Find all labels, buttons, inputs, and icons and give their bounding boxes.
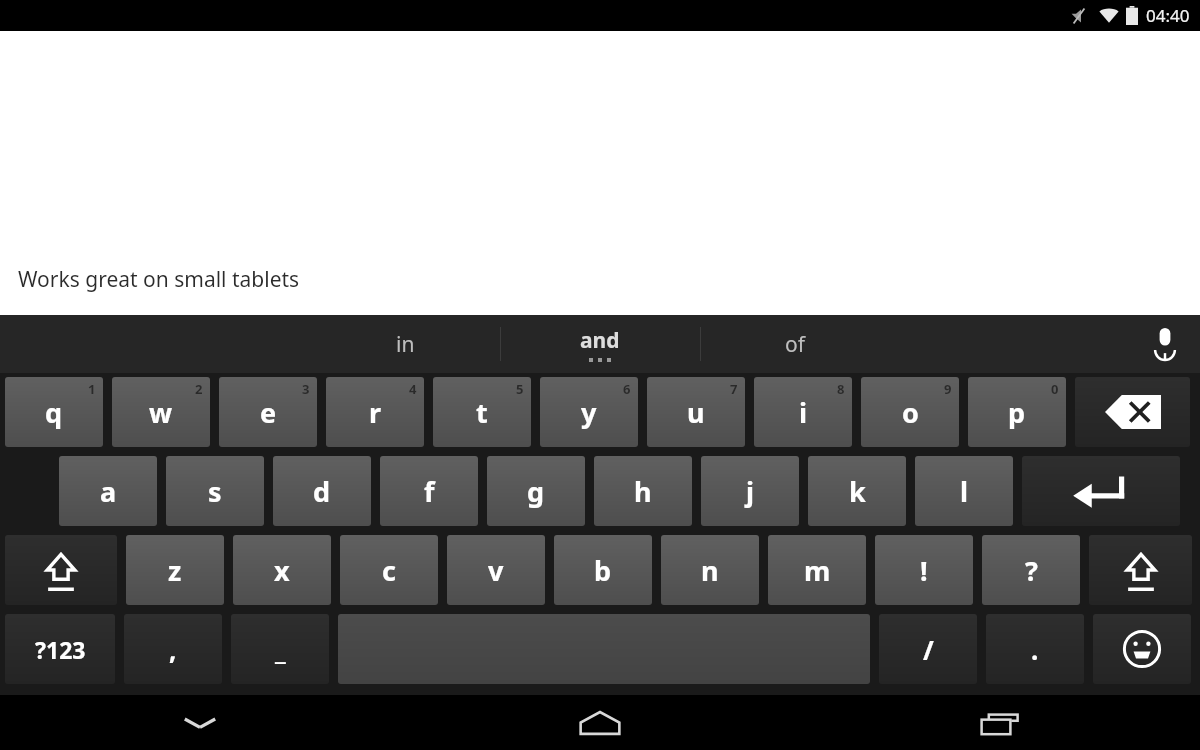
staticText: i — [799, 394, 808, 431]
button[interactable]: Shift — [1089, 535, 1192, 605]
staticText: a — [100, 473, 117, 510]
button[interactable]: . — [986, 614, 1084, 684]
staticText: 6 — [623, 380, 631, 398]
staticText: _ — [275, 632, 286, 667]
staticText: . — [1031, 632, 1039, 667]
staticText: 3 — [302, 380, 310, 398]
staticText: ? — [1025, 552, 1038, 589]
staticText: u — [687, 394, 705, 431]
staticText: d — [313, 473, 331, 510]
button[interactable]: r — [326, 377, 424, 447]
staticText: y — [581, 394, 597, 431]
staticText: o — [902, 394, 919, 431]
staticText: Works great on small tablets — [18, 265, 300, 294]
button[interactable]: Recent apps — [800, 695, 1200, 750]
staticText: e — [260, 394, 277, 431]
staticText: / — [923, 632, 934, 667]
button[interactable]: in — [310, 315, 500, 373]
staticText: m — [804, 552, 831, 589]
staticText: 9 — [944, 380, 952, 398]
button[interactable]: m — [768, 535, 866, 605]
button[interactable]: x — [233, 535, 331, 605]
staticText: s — [208, 473, 222, 510]
staticText: and — [580, 326, 620, 355]
button[interactable]: v — [447, 535, 545, 605]
button[interactable]: , — [124, 614, 222, 684]
staticText: 04:40 — [1146, 4, 1190, 27]
button[interactable]: f — [380, 456, 478, 526]
staticText: z — [168, 552, 182, 589]
staticText: 5 — [516, 380, 524, 398]
button[interactable]: Home — [400, 695, 800, 750]
staticText: b — [594, 552, 612, 589]
staticText: v — [488, 552, 504, 589]
staticText: 1 — [88, 380, 96, 398]
staticText: 4 — [409, 380, 417, 398]
button[interactable]: u — [647, 377, 745, 447]
button[interactable]: and — [500, 315, 700, 373]
staticText: c — [382, 552, 396, 589]
button[interactable]: i — [754, 377, 852, 447]
staticText: q — [45, 394, 63, 431]
button[interactable]: _ — [231, 614, 329, 684]
button[interactable]: p — [968, 377, 1066, 447]
staticText: w — [149, 394, 173, 431]
button[interactable]: c — [340, 535, 438, 605]
button[interactable]: ? — [982, 535, 1080, 605]
button[interactable]: w — [112, 377, 210, 447]
staticText: 7 — [730, 380, 738, 398]
staticText: h — [634, 473, 652, 510]
staticText: x — [274, 552, 290, 589]
button[interactable]: b — [554, 535, 652, 605]
staticText: r — [369, 394, 382, 431]
button[interactable]: l — [915, 456, 1013, 526]
button[interactable]: h — [594, 456, 692, 526]
button[interactable]: s — [166, 456, 264, 526]
button[interactable]: g — [487, 456, 585, 526]
staticText: 8 — [837, 380, 845, 398]
staticText: t — [476, 394, 488, 431]
button[interactable]: k — [808, 456, 906, 526]
button[interactable]: a — [59, 456, 157, 526]
button[interactable]: ! — [875, 535, 973, 605]
staticText: ! — [920, 552, 928, 589]
button[interactable]: t — [433, 377, 531, 447]
button[interactable]: ?123 — [5, 614, 115, 684]
staticText: 2 — [195, 380, 203, 398]
button[interactable]: / — [879, 614, 977, 684]
staticText: j — [746, 473, 755, 510]
staticText: 0 — [1051, 380, 1059, 398]
button[interactable]: of — [700, 315, 890, 373]
staticText: g — [527, 473, 545, 510]
button[interactable]: j — [701, 456, 799, 526]
staticText: n — [701, 552, 719, 589]
button[interactable]: Enter — [1022, 456, 1180, 526]
button[interactable]: q — [5, 377, 103, 447]
staticText: of — [785, 330, 805, 359]
staticText: in — [396, 330, 415, 359]
staticText: f — [424, 473, 435, 510]
button[interactable]: y — [540, 377, 638, 447]
staticText: k — [849, 473, 866, 510]
button[interactable]: d — [273, 456, 371, 526]
button[interactable]: n — [661, 535, 759, 605]
button[interactable]: Voice input — [1130, 315, 1200, 373]
button[interactable]: e — [219, 377, 317, 447]
staticText: p — [1008, 394, 1026, 431]
staticText: l — [960, 473, 969, 510]
button[interactable]: o — [861, 377, 959, 447]
button[interactable]: Shift — [5, 535, 117, 605]
button[interactable]: Hide keyboard — [0, 695, 400, 750]
button[interactable]: Backspace — [1075, 377, 1190, 447]
button[interactable]: z — [126, 535, 224, 605]
button[interactable]: Emoji — [1093, 614, 1191, 684]
staticText: , — [169, 632, 177, 667]
staticText: ?123 — [35, 634, 86, 665]
